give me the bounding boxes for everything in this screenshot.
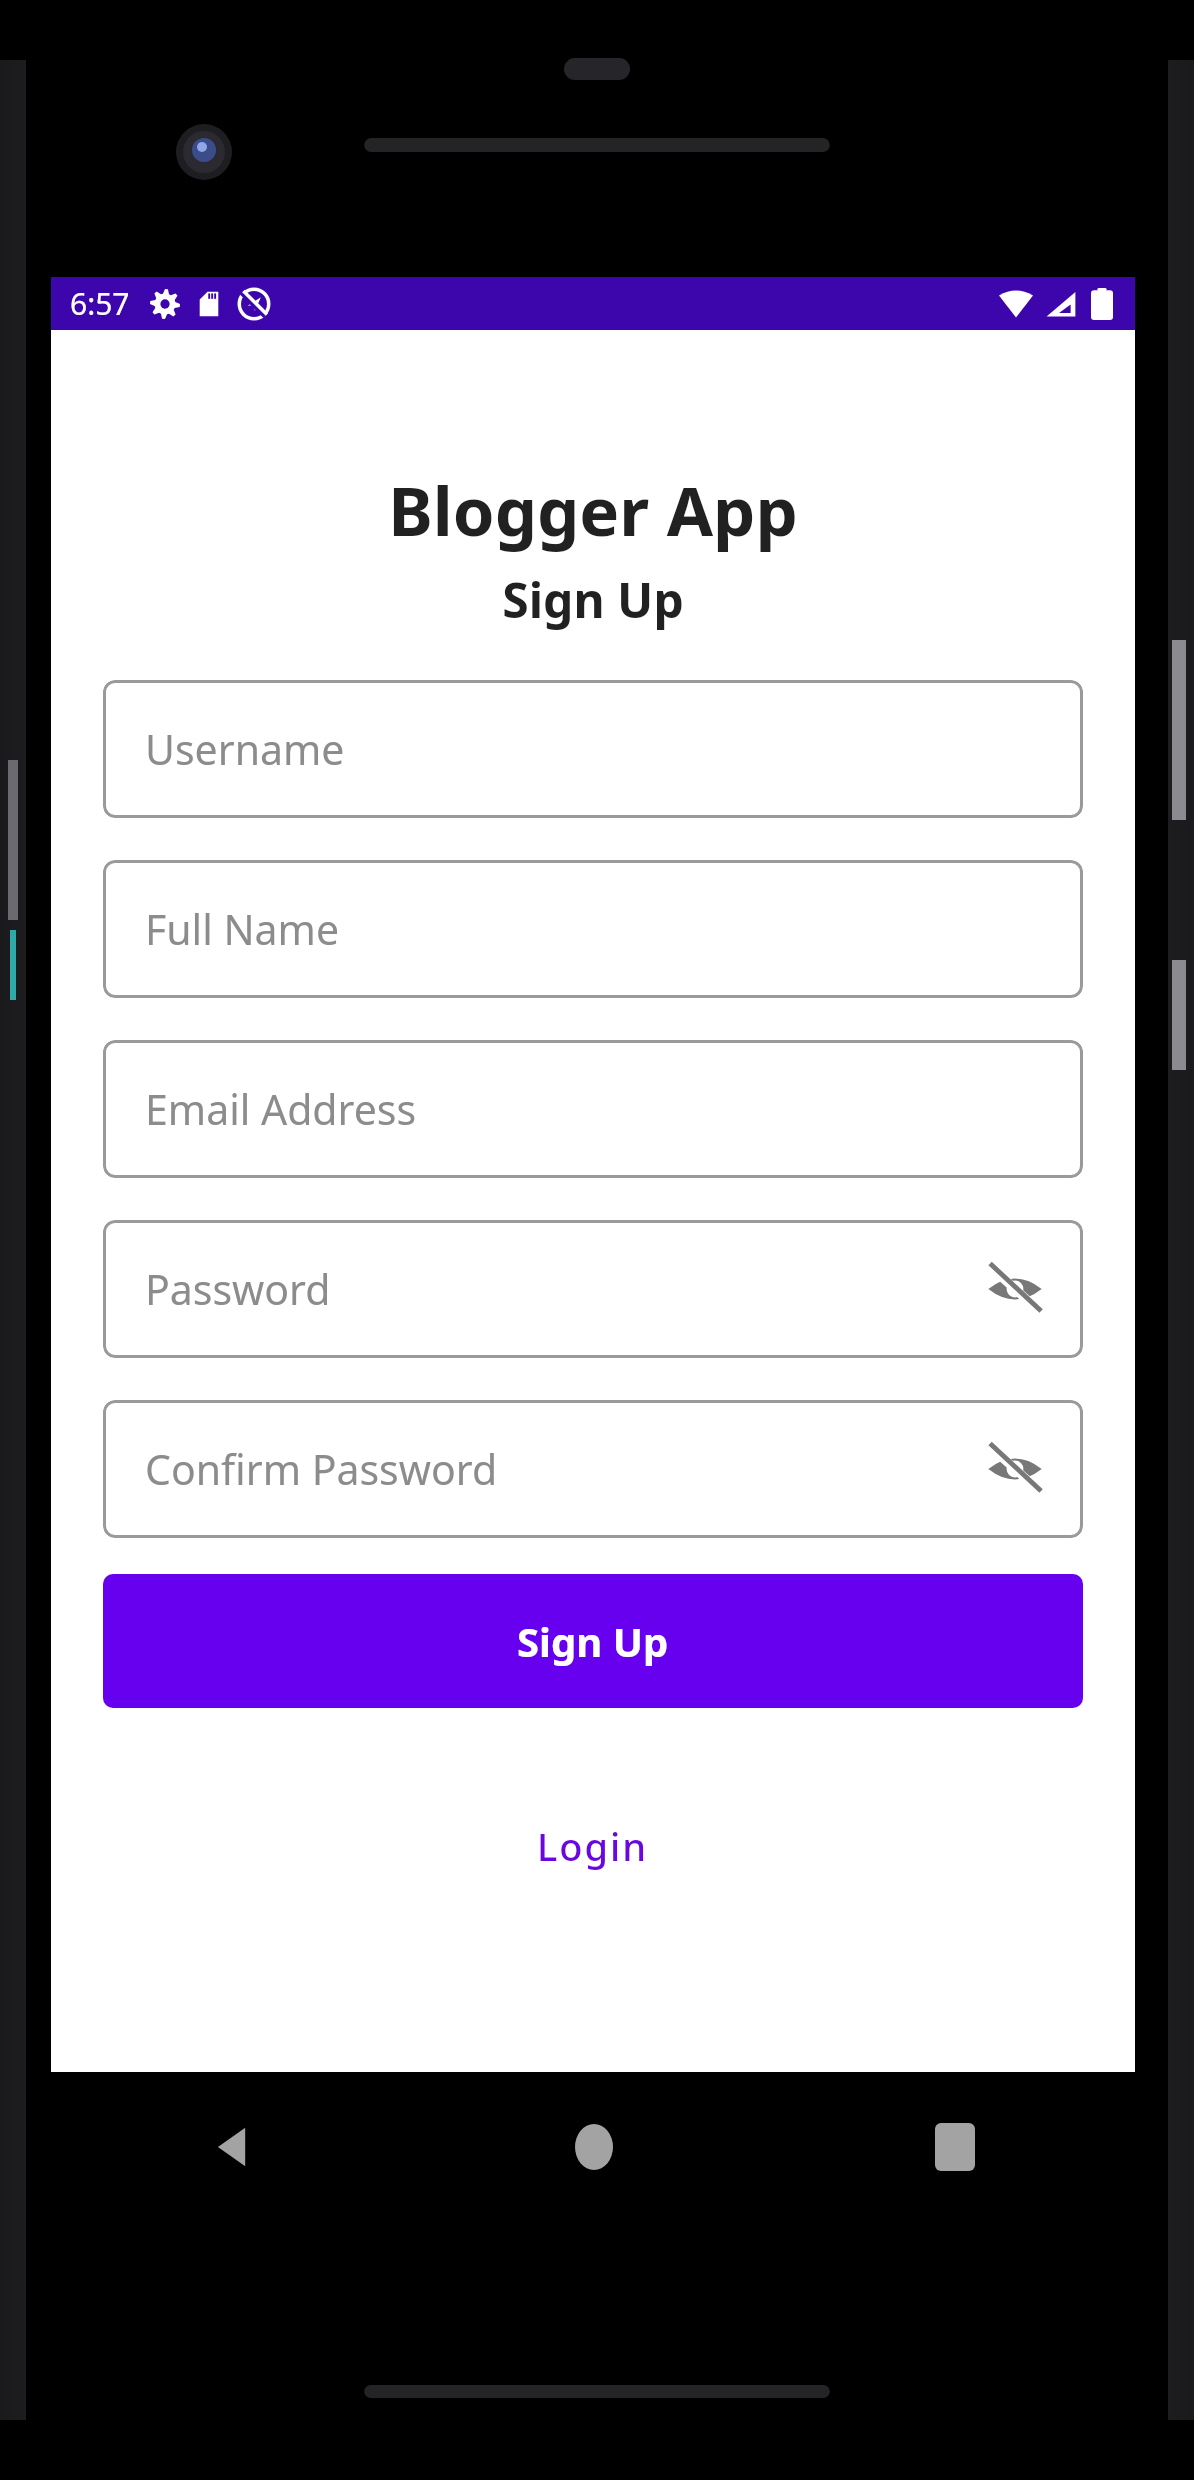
button[interactable]: Username xyxy=(103,680,1083,818)
staticText: Sign Up xyxy=(517,1614,669,1668)
button[interactable]: Toggle password visibility xyxy=(977,1431,1053,1507)
button[interactable]: Email Address xyxy=(103,1040,1083,1178)
button[interactable]: Home xyxy=(413,2072,774,2222)
staticText: Blogger App xyxy=(388,464,798,555)
button[interactable]: Login xyxy=(511,1808,675,1884)
staticText: Login xyxy=(537,1820,649,1872)
staticText: Confirm Password xyxy=(145,1441,498,1497)
button[interactable]: Full Name xyxy=(103,860,1083,998)
staticText: Username xyxy=(145,721,345,777)
staticText: Full Name xyxy=(145,901,340,957)
staticText: Email Address xyxy=(145,1081,417,1137)
button[interactable]: Recent apps xyxy=(774,2072,1135,2222)
button[interactable]: Sign Up xyxy=(103,1574,1083,1708)
button[interactable]: Password xyxy=(103,1220,1083,1358)
button[interactable]: Toggle password visibility xyxy=(977,1251,1053,1327)
button[interactable]: Confirm Password xyxy=(103,1400,1083,1538)
staticText: 6:57 xyxy=(70,283,130,324)
staticText: Password xyxy=(145,1261,331,1317)
staticText: Sign Up xyxy=(502,567,684,632)
button[interactable]: Back xyxy=(51,2072,413,2222)
